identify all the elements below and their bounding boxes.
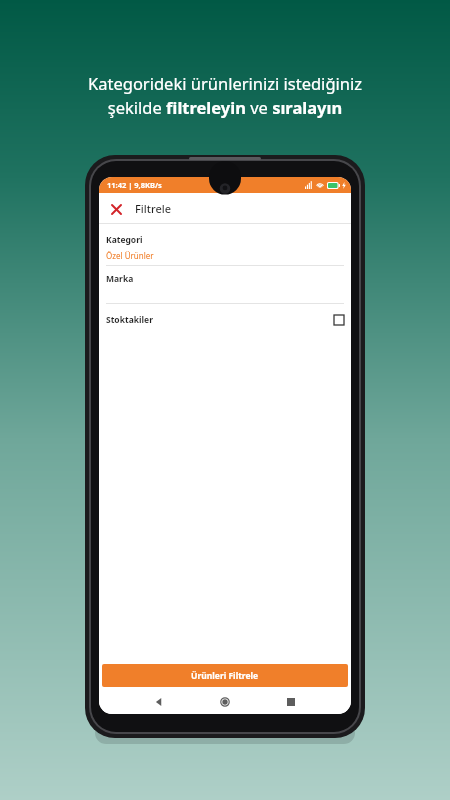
staticText: Marka [106, 273, 134, 285]
staticText: 11:42 | 9,8KB/s [107, 180, 162, 190]
button[interactable]: Kategori [99, 234, 351, 261]
button[interactable]: Back [149, 692, 169, 712]
button[interactable]: Home [215, 692, 235, 712]
button[interactable]: Ürünleri Filtrele [102, 664, 348, 687]
staticText: Filtrele [135, 201, 171, 216]
button[interactable]: Close [105, 198, 127, 220]
staticText: Stoktakiler [106, 314, 153, 326]
staticText: Kategori [106, 234, 143, 246]
button[interactable]: Marka [99, 266, 351, 292]
staticText: Kategorideki ürünlerinizi istediğiniz şe… [88, 72, 362, 119]
button[interactable]: Recents [281, 692, 301, 712]
button[interactable]: Stoktakiler [99, 304, 351, 336]
staticText: Özel Ürünler [106, 250, 154, 261]
staticText: Ürünleri Filtrele [191, 670, 259, 682]
